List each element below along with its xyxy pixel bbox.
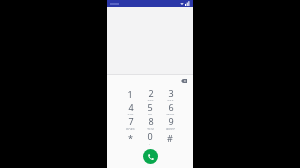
staticText: + bbox=[149, 143, 151, 145]
button[interactable]: Backspace bbox=[180, 77, 188, 85]
staticText: 4 bbox=[128, 101, 134, 113]
button[interactable]: # bbox=[161, 130, 179, 145]
staticText: # bbox=[167, 132, 173, 144]
button[interactable]: * bbox=[121, 130, 139, 145]
staticText: ABC bbox=[147, 100, 154, 101]
button[interactable]: 5 bbox=[141, 101, 159, 115]
staticText: PQRS bbox=[126, 128, 135, 130]
button[interactable]: 1 bbox=[121, 87, 139, 101]
button[interactable]: 4 bbox=[121, 101, 139, 115]
button[interactable]: 9 bbox=[161, 115, 179, 130]
staticText: GHI bbox=[127, 114, 134, 115]
staticText: JKL bbox=[148, 114, 153, 115]
button[interactable]: 2 bbox=[141, 87, 159, 101]
staticText: TUV bbox=[147, 128, 154, 130]
staticText: 5 bbox=[147, 101, 153, 113]
staticText: DEF bbox=[167, 100, 174, 101]
staticText: 0 bbox=[147, 130, 153, 142]
staticText: 1 bbox=[127, 88, 133, 100]
staticText: 6 bbox=[168, 101, 174, 113]
staticText: 9 bbox=[168, 115, 174, 127]
staticText: 2 bbox=[148, 87, 154, 99]
staticText: WXYZ bbox=[166, 128, 175, 130]
staticText: * bbox=[128, 132, 133, 144]
staticText: 3 bbox=[168, 87, 174, 99]
staticText: 7 bbox=[128, 115, 134, 127]
button[interactable]: 3 bbox=[161, 87, 179, 101]
button[interactable]: 0 bbox=[141, 130, 159, 145]
button[interactable]: 7 bbox=[121, 115, 139, 130]
staticText: MNO bbox=[166, 114, 175, 115]
button[interactable]: Call bbox=[143, 149, 158, 164]
staticText: 8 bbox=[148, 115, 154, 127]
button[interactable]: 6 bbox=[161, 101, 179, 115]
button[interactable]: 8 bbox=[141, 115, 159, 130]
